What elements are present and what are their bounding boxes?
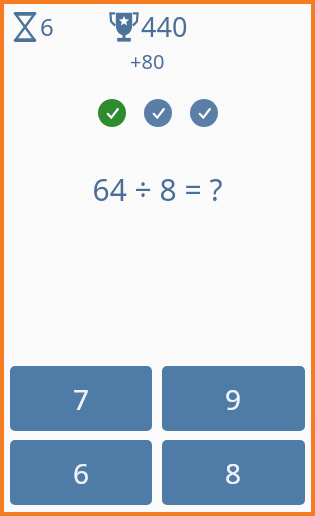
button[interactable]: Answered correctly bbox=[190, 99, 218, 127]
staticText: 7 bbox=[73, 380, 90, 418]
button[interactable]: 9 bbox=[162, 366, 305, 431]
button[interactable]: 6 bbox=[10, 440, 152, 505]
button[interactable]: Answered correctly bbox=[144, 99, 172, 127]
staticText: 6 bbox=[73, 454, 90, 492]
staticText: 6 bbox=[40, 10, 54, 43]
staticText: 8 bbox=[225, 454, 242, 492]
staticText: 440 bbox=[141, 8, 188, 45]
staticText: +80 bbox=[130, 48, 165, 75]
staticText: 9 bbox=[225, 380, 242, 418]
button[interactable]: 8 bbox=[162, 440, 305, 505]
button[interactable]: 7 bbox=[10, 366, 152, 431]
staticText: 64 ÷ 8 = ? bbox=[92, 169, 223, 210]
button[interactable]: Answered correctly bbox=[98, 99, 126, 127]
